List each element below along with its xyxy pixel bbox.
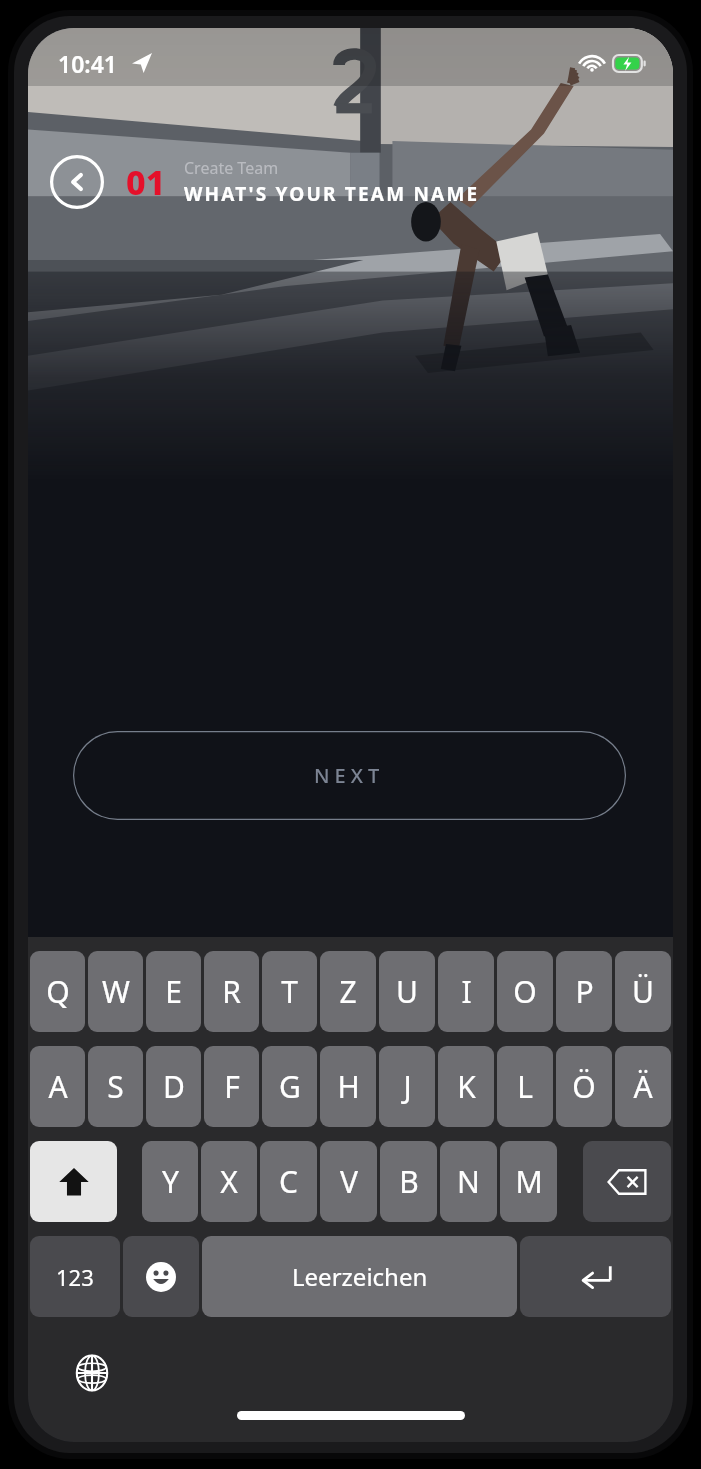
button[interactable]: Leerzeichen bbox=[202, 1236, 517, 1317]
staticText: R bbox=[222, 971, 241, 1012]
button[interactable]: W bbox=[88, 951, 143, 1032]
button[interactable]: V bbox=[320, 1141, 377, 1222]
staticText: Z bbox=[339, 971, 357, 1012]
button[interactable]: H bbox=[320, 1046, 376, 1127]
button[interactable]: Delete bbox=[583, 1141, 671, 1222]
staticText: X bbox=[220, 1161, 238, 1202]
button[interactable]: Ü bbox=[615, 951, 671, 1032]
staticText: Create Team bbox=[184, 157, 279, 179]
button[interactable]: R bbox=[204, 951, 259, 1032]
button[interactable]: Q bbox=[30, 951, 85, 1032]
button[interactable]: O bbox=[497, 951, 553, 1032]
button[interactable]: D bbox=[146, 1046, 201, 1127]
staticText: Q bbox=[46, 971, 70, 1012]
staticText: H bbox=[337, 1066, 360, 1107]
staticText: D bbox=[163, 1066, 185, 1107]
button[interactable]: L bbox=[497, 1046, 553, 1127]
button[interactable]: K bbox=[438, 1046, 494, 1127]
button[interactable]: N bbox=[440, 1141, 497, 1222]
staticText: Y bbox=[162, 1161, 179, 1202]
staticText: Leerzeichen bbox=[292, 1260, 428, 1293]
button[interactable]: Shift bbox=[30, 1141, 117, 1222]
staticText: K bbox=[457, 1066, 476, 1107]
staticText: WHAT'S YOUR TEAM NAME bbox=[184, 181, 480, 207]
button[interactable]: G bbox=[262, 1046, 317, 1127]
staticText: F bbox=[224, 1066, 240, 1107]
staticText: C bbox=[279, 1161, 298, 1202]
staticText: P bbox=[575, 971, 594, 1012]
staticText: 10:41 bbox=[58, 48, 117, 79]
button[interactable]: S bbox=[88, 1046, 143, 1127]
staticText: E bbox=[165, 971, 182, 1012]
staticText: Ü bbox=[632, 971, 654, 1012]
button[interactable]: P bbox=[556, 951, 612, 1032]
button[interactable]: M bbox=[500, 1141, 557, 1222]
staticText: G bbox=[279, 1066, 301, 1107]
button[interactable]: Ä bbox=[615, 1046, 671, 1127]
staticText: Ö bbox=[572, 1066, 596, 1107]
button[interactable]: Ö bbox=[556, 1046, 612, 1127]
staticText: N bbox=[457, 1161, 480, 1202]
staticText: J bbox=[403, 1066, 412, 1107]
button[interactable]: T bbox=[262, 951, 317, 1032]
staticText: M bbox=[515, 1161, 543, 1202]
staticText: S bbox=[107, 1066, 124, 1107]
button[interactable]: A bbox=[30, 1046, 85, 1127]
staticText: Ä bbox=[633, 1066, 653, 1107]
button[interactable]: U bbox=[379, 951, 435, 1032]
button[interactable]: E bbox=[146, 951, 201, 1032]
staticText: 123 bbox=[56, 1262, 94, 1292]
staticText: V bbox=[340, 1161, 358, 1202]
staticText: W bbox=[102, 971, 130, 1012]
staticText: T bbox=[281, 971, 298, 1012]
staticText: O bbox=[513, 971, 537, 1012]
button[interactable]: Emoji bbox=[123, 1236, 199, 1317]
staticText: U bbox=[396, 971, 418, 1012]
button[interactable]: 123 bbox=[30, 1236, 120, 1317]
button[interactable]: NEXT bbox=[73, 731, 626, 820]
button[interactable]: Y bbox=[142, 1141, 198, 1222]
button[interactable]: F bbox=[204, 1046, 259, 1127]
staticText: 01 bbox=[126, 159, 166, 205]
staticText: A bbox=[48, 1066, 68, 1107]
button[interactable]: Back bbox=[50, 155, 104, 209]
staticText: NEXT bbox=[314, 762, 385, 789]
button[interactable]: J bbox=[379, 1046, 435, 1127]
button[interactable]: Return bbox=[520, 1236, 671, 1317]
staticText: L bbox=[517, 1066, 533, 1107]
button[interactable]: C bbox=[260, 1141, 317, 1222]
staticText: I bbox=[461, 971, 472, 1012]
button[interactable]: Change keyboard bbox=[68, 1349, 116, 1397]
button[interactable]: Z bbox=[320, 951, 376, 1032]
button[interactable]: B bbox=[380, 1141, 437, 1222]
button[interactable]: I bbox=[438, 951, 494, 1032]
button[interactable]: X bbox=[201, 1141, 257, 1222]
staticText: B bbox=[399, 1161, 419, 1202]
